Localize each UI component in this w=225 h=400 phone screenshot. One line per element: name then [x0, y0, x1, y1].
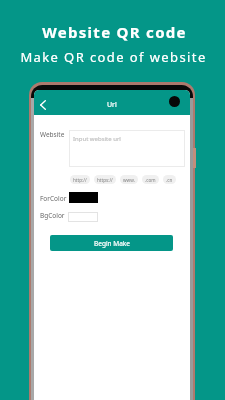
button[interactable]: Input website url — [69, 130, 185, 167]
staticText: Website — [40, 130, 65, 139]
staticText: Begin Make — [94, 239, 130, 248]
staticText: ForColor — [40, 194, 67, 203]
staticText: Website QR code — [42, 22, 187, 42]
staticText: .com — [145, 177, 156, 183]
button[interactable]: http:// — [70, 175, 90, 184]
staticText: BgColor — [40, 211, 65, 220]
staticText: Make QR code of website — [20, 48, 207, 66]
staticText: .cn — [166, 177, 173, 183]
button[interactable]: Back — [35, 97, 51, 113]
button[interactable]: Begin Make — [50, 235, 173, 251]
button[interactable]: www. — [120, 175, 138, 184]
button[interactable]: .com — [142, 175, 159, 184]
staticText: Input website url — [73, 135, 121, 143]
button[interactable]: .cn — [163, 175, 176, 184]
button[interactable] — [68, 212, 98, 222]
button[interactable]: https:// — [94, 175, 116, 184]
staticText: http:// — [73, 177, 87, 183]
staticText: Url — [107, 100, 117, 110]
staticText: www. — [123, 177, 135, 183]
staticText: https:// — [97, 177, 113, 183]
